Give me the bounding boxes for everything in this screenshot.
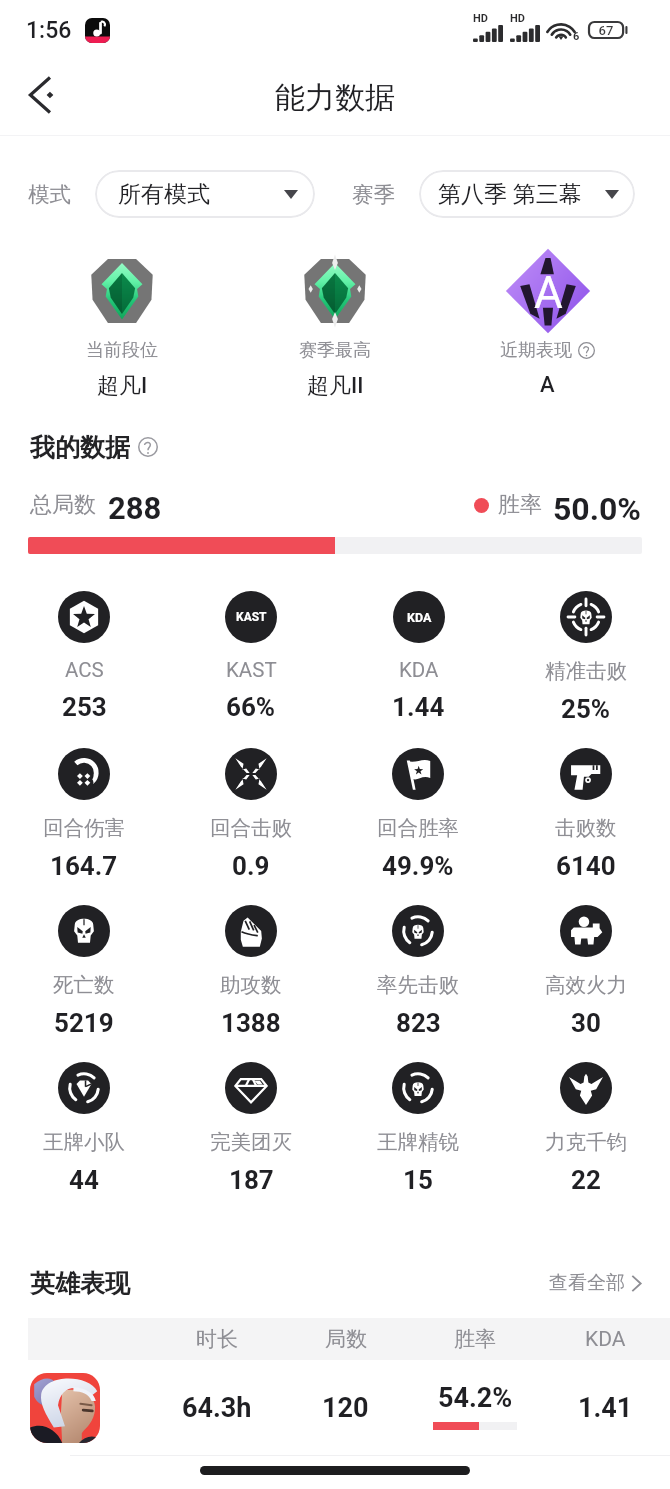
- staticText: 王牌小队: [43, 1129, 125, 1155]
- staticText: 0.9: [232, 851, 270, 881]
- button[interactable]: 王牌小队: [43, 1062, 125, 1195]
- staticText: 局数: [325, 1326, 367, 1352]
- button[interactable]: 赛季最高: [299, 248, 371, 398]
- staticText: 击败数: [555, 815, 617, 841]
- button[interactable]: 回合击败: [210, 748, 292, 881]
- staticText: 第八季 第三幕: [438, 180, 582, 209]
- staticText: 回合伤害: [43, 815, 125, 841]
- button[interactable]: 高效火力: [545, 905, 627, 1038]
- staticText: A: [534, 267, 563, 319]
- staticText: 22: [571, 1165, 601, 1195]
- staticText: 回合胜率: [377, 815, 459, 841]
- staticText: 66%: [226, 692, 276, 722]
- staticText: 胜率: [454, 1326, 496, 1352]
- staticText: 力克千钧: [545, 1129, 627, 1155]
- staticText: 完美团灭: [210, 1129, 292, 1155]
- staticText: 高效火力: [545, 972, 627, 998]
- staticText: 1.44: [392, 692, 445, 722]
- staticText: 15: [403, 1165, 433, 1195]
- staticText: 823: [396, 1008, 441, 1038]
- button[interactable]: KAST: [225, 591, 277, 722]
- staticText: 44: [69, 1165, 99, 1195]
- staticText: 50.0%: [553, 490, 642, 520]
- staticText: 回合击败: [210, 815, 292, 841]
- staticText: ACS: [65, 658, 104, 682]
- staticText: 288: [108, 490, 162, 520]
- staticText: 所有模式: [118, 180, 210, 209]
- staticText: 6140: [556, 851, 616, 881]
- staticText: 超凡I: [97, 372, 148, 398]
- button[interactable]: 当前段位: [86, 248, 158, 398]
- staticText: 253: [62, 692, 107, 722]
- staticText: 率先击败: [377, 972, 459, 998]
- button[interactable]: 击败数: [555, 748, 617, 881]
- staticText: KDA: [399, 658, 439, 682]
- button[interactable]: 回合胜率: [377, 748, 459, 881]
- staticText: 超凡II: [307, 372, 364, 398]
- button[interactable]: 王牌精锐: [377, 1062, 459, 1195]
- button[interactable]: 助攻数: [220, 905, 282, 1038]
- staticText: 赛季: [352, 181, 395, 208]
- staticText: 英雄表现: [30, 1268, 130, 1299]
- staticText: 死亡数: [53, 972, 115, 998]
- button[interactable]: 率先击败: [377, 905, 459, 1038]
- staticText: A: [540, 372, 555, 398]
- staticText: KDA: [407, 610, 432, 625]
- button[interactable]: 64.3h: [0, 1360, 670, 1456]
- staticText: 30: [571, 1008, 601, 1038]
- staticText: 当前段位: [86, 339, 158, 362]
- button[interactable]: KDA: [392, 591, 445, 722]
- button[interactable]: 第八季 第三幕: [419, 170, 635, 218]
- button[interactable]: A: [500, 248, 595, 398]
- staticText: 赛季最高: [299, 339, 371, 362]
- staticText: KAST: [236, 610, 267, 624]
- button[interactable]: 查看全部: [545, 1267, 646, 1299]
- button[interactable]: ACS: [58, 591, 110, 722]
- staticText: 模式: [28, 181, 71, 208]
- button[interactable]: 完美团灭: [210, 1062, 292, 1195]
- staticText: 6: [573, 30, 580, 43]
- button[interactable]: 精准击败: [545, 591, 627, 724]
- staticText: HD: [510, 12, 525, 25]
- staticText: 时长: [196, 1326, 238, 1352]
- staticText: 精准击败: [545, 658, 627, 684]
- staticText: 我的数据: [30, 432, 130, 462]
- staticText: 助攻数: [220, 972, 282, 998]
- button[interactable]: Back: [12, 66, 70, 124]
- button[interactable]: 力克千钧: [545, 1062, 627, 1195]
- staticText: 1:56: [26, 17, 72, 44]
- button[interactable]: 所有模式: [95, 170, 315, 218]
- staticText: 49.9%: [382, 851, 454, 881]
- staticText: 近期表现: [500, 339, 572, 362]
- staticText: 67: [588, 23, 624, 38]
- button[interactable]: 回合伤害: [43, 748, 125, 881]
- staticText: 164.7: [50, 851, 118, 881]
- staticText: 54.2%: [438, 1382, 513, 1414]
- staticText: 187: [229, 1165, 274, 1195]
- staticText: 查看全部: [549, 1271, 625, 1295]
- staticText: 胜率: [498, 491, 542, 519]
- staticText: 1.41: [578, 1392, 633, 1424]
- staticText: 能力数据: [275, 79, 395, 117]
- staticText: 64.3h: [182, 1392, 252, 1424]
- staticText: 总局数: [30, 491, 96, 519]
- staticText: 5219: [54, 1008, 114, 1038]
- staticText: 1388: [221, 1008, 281, 1038]
- staticText: HD: [473, 12, 488, 25]
- staticText: KAST: [226, 658, 277, 682]
- staticText: KDA: [585, 1327, 626, 1352]
- staticText: 25%: [561, 694, 611, 724]
- staticText: 120: [322, 1392, 369, 1424]
- staticText: 王牌精锐: [377, 1129, 459, 1155]
- button[interactable]: 死亡数: [53, 905, 115, 1038]
